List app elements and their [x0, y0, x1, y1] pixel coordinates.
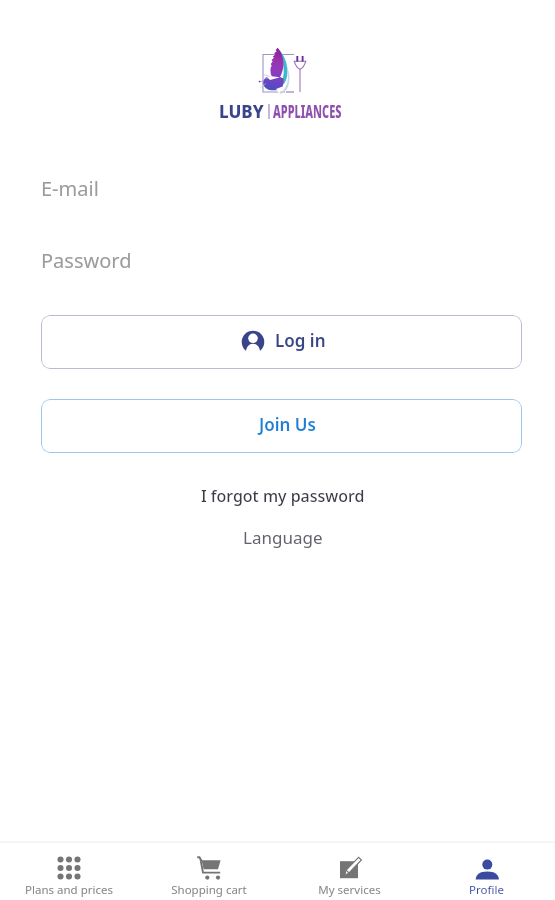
staticText: Profile — [469, 882, 504, 898]
staticText: Join Us — [259, 413, 316, 436]
button[interactable]: Log in — [41, 315, 522, 369]
button[interactable]: Plans and prices — [0, 843, 139, 900]
staticText: My services — [318, 882, 381, 898]
staticText: Password — [41, 247, 132, 274]
button[interactable]: Shopping cart — [139, 843, 279, 900]
button[interactable]: Profile — [419, 843, 554, 900]
staticText: Language — [243, 526, 323, 549]
staticText: Plans and prices — [25, 882, 113, 898]
staticText: Log in — [275, 329, 326, 352]
button[interactable]: I forgot my password — [5, 482, 555, 510]
staticText: I forgot my password — [201, 485, 365, 507]
button[interactable]: Join Us — [41, 399, 522, 453]
staticText: Shopping cart — [171, 882, 247, 898]
button[interactable]: Language — [5, 523, 555, 551]
other: Luby Appliances logo — [258, 45, 308, 95]
staticText: APPLIANCES — [273, 100, 342, 123]
staticText: E-mail — [41, 175, 99, 202]
button[interactable]: My services — [279, 843, 419, 900]
staticText: LUBY — [219, 100, 264, 123]
button[interactable]: E-mail — [0, 163, 555, 213]
button[interactable]: Password — [0, 235, 555, 285]
